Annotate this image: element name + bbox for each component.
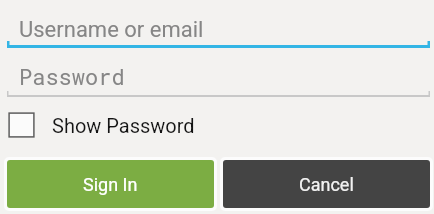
button[interactable]: Cancel xyxy=(220,157,433,211)
staticText: Username or email xyxy=(19,17,204,43)
staticText: Sign In xyxy=(83,174,138,195)
button[interactable]: Username or email field xyxy=(0,6,434,54)
staticText: Password xyxy=(19,62,125,91)
button[interactable]: Sign In xyxy=(4,157,217,211)
button[interactable]: Password field xyxy=(0,56,434,104)
staticText: Cancel xyxy=(299,174,354,195)
staticText: Show Password xyxy=(52,114,195,137)
button[interactable]: Show Password xyxy=(8,112,195,138)
